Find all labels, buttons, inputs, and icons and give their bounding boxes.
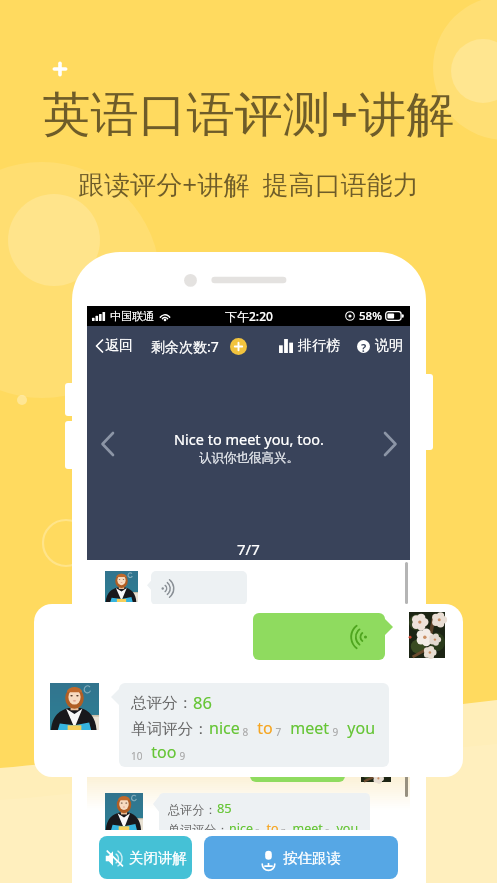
staticText: ?	[361, 340, 367, 353]
staticText: 排行榜	[298, 337, 340, 355]
button[interactable]: 排行榜	[276, 334, 343, 358]
staticText: nice	[229, 820, 253, 837]
button[interactable]: Next sentence	[376, 430, 404, 458]
staticText: to	[260, 820, 279, 837]
staticText: 9	[323, 826, 330, 837]
button[interactable]: Previous sentence	[93, 430, 121, 458]
staticText: 跟读评分+讲解 提高口语能力	[0, 166, 497, 202]
button[interactable]: ?	[354, 334, 406, 358]
staticText: you	[339, 717, 376, 739]
staticText: meet	[282, 717, 330, 739]
staticText: 剩余次数:7	[151, 337, 219, 356]
staticText: 返回	[105, 337, 133, 355]
staticText: nice	[209, 717, 240, 739]
staticText: 7	[279, 826, 286, 837]
staticText: meet	[286, 820, 323, 837]
staticText: you	[330, 820, 359, 837]
staticText: 认识你也很高兴。	[199, 450, 299, 466]
staticText: 58%	[359, 308, 382, 324]
staticText: too	[143, 741, 177, 763]
button[interactable]: Play my recording	[253, 613, 385, 660]
staticText: 10	[168, 845, 177, 856]
button[interactable]: 返回	[93, 332, 135, 360]
button[interactable]: 关闭讲解	[99, 836, 192, 879]
button[interactable]: Play teacher audio	[151, 571, 247, 605]
staticText: to	[249, 717, 273, 739]
staticText: 下午2:20	[225, 308, 273, 324]
staticText: 10	[131, 749, 143, 763]
button[interactable]: 按住跟读	[204, 836, 398, 879]
staticText: 8	[253, 826, 260, 837]
staticText: 8	[240, 725, 249, 739]
staticText: 9	[330, 725, 339, 739]
staticText: Nice to meet you, too.	[174, 429, 324, 449]
staticText: 单词评分：	[131, 719, 209, 739]
staticText: 7/7	[237, 539, 260, 559]
button[interactable]: Add times	[230, 338, 247, 355]
staticText: 9	[177, 749, 186, 763]
staticText: 7	[273, 725, 282, 739]
staticText: 总评分：	[168, 802, 217, 817]
staticText: 说明	[375, 337, 403, 355]
staticText: 86	[193, 691, 212, 713]
staticText: 英语口语评测+讲解	[0, 80, 497, 146]
staticText: 关闭讲解	[129, 849, 187, 867]
staticText: 按住跟读	[283, 849, 341, 867]
staticText: 总评分：	[131, 693, 193, 713]
staticText: too	[177, 839, 204, 856]
staticText: 85	[217, 799, 232, 817]
staticText: 单词评分：	[168, 822, 229, 837]
staticText: 中国联通	[110, 309, 154, 323]
